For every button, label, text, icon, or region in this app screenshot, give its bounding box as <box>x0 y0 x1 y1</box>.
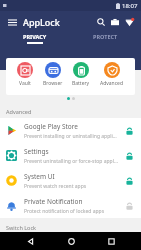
button[interactable]: PRIVACY <box>0 33 70 44</box>
button[interactable]: Open navigation menu <box>5 15 19 29</box>
button[interactable]: Vault <box>16 62 34 87</box>
button[interactable]: Notifications <box>122 15 136 29</box>
button[interactable]: Locked <box>123 150 135 162</box>
staticText: Browser <box>43 80 63 87</box>
staticText: PRIVACY <box>23 33 47 40</box>
staticText: Prevent watch recent apps <box>24 183 87 190</box>
staticText: Prevent uninstalling or force-stop appli… <box>24 158 119 165</box>
staticText: Settings <box>24 147 49 156</box>
staticText: PROTECT <box>93 33 118 40</box>
staticText: AppLock <box>23 16 60 28</box>
button[interactable]: Advanced <box>99 62 125 87</box>
button[interactable]: Back <box>19 232 41 250</box>
staticText: Switch Lock <box>6 224 37 231</box>
staticText: Protect notification of locked apps <box>24 208 105 215</box>
button[interactable]: Private Notification <box>0 193 141 218</box>
staticText: Prevent installing or uninstalling appli… <box>24 133 119 140</box>
staticText: Advanced <box>100 80 124 87</box>
button[interactable]: Recent apps <box>100 232 122 250</box>
button[interactable]: Search <box>94 15 108 29</box>
staticText: Private Notification <box>24 197 83 206</box>
button[interactable]: Locked <box>123 125 135 137</box>
button[interactable]: Settings <box>0 143 141 168</box>
staticText: Google Play Store <box>24 122 78 131</box>
staticText: 18:07 <box>122 2 138 10</box>
button[interactable]: Browser <box>42 62 64 87</box>
button[interactable]: Hidden vault <box>108 15 122 29</box>
staticText: Advanced <box>6 108 32 115</box>
button[interactable]: System UI <box>0 168 141 193</box>
button[interactable]: Battery <box>71 62 91 87</box>
button[interactable]: Google Play Store <box>0 118 141 143</box>
button[interactable]: Unlocked <box>123 200 135 212</box>
staticText: Battery <box>72 80 90 87</box>
staticText: System UI <box>24 172 55 181</box>
button[interactable]: Home <box>60 232 82 250</box>
button[interactable]: Locked <box>123 175 135 187</box>
button[interactable]: PROTECT <box>70 33 141 44</box>
staticText: Vault <box>19 80 31 87</box>
